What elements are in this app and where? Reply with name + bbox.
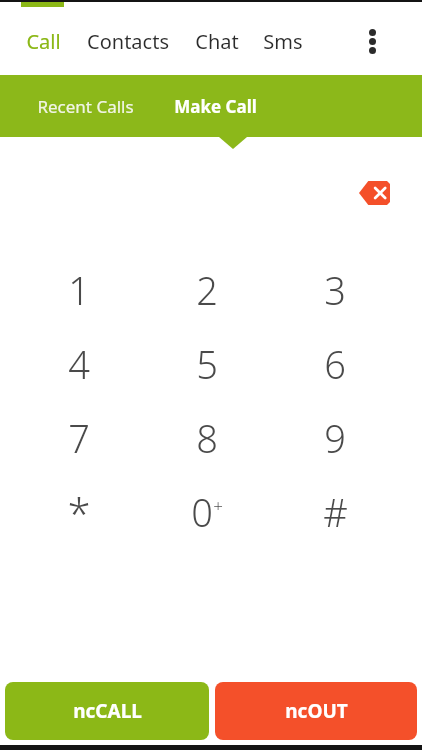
staticText: 4 (68, 338, 90, 390)
button[interactable]: Recent Calls (37, 95, 134, 118)
button[interactable]: Chat (191, 22, 243, 61)
staticText: Recent Calls (37, 95, 134, 118)
button[interactable]: ncOUT (215, 682, 417, 740)
button[interactable]: 0 (143, 475, 271, 549)
button[interactable]: 2 (143, 253, 271, 327)
staticText: Make Call (174, 95, 257, 118)
button[interactable]: Call (22, 22, 65, 61)
button[interactable]: * (15, 475, 143, 549)
staticText: 0 (191, 486, 213, 538)
staticText: ncCALL (73, 698, 142, 724)
staticText: # (323, 486, 348, 538)
staticText: 3 (324, 264, 346, 316)
staticText: 5 (196, 338, 218, 390)
button[interactable]: 5 (143, 327, 271, 401)
staticText: ncOUT (285, 698, 348, 724)
staticText: 8 (196, 412, 218, 464)
staticText: Call (26, 28, 61, 55)
staticText: 2 (196, 264, 218, 316)
staticText: Sms (263, 28, 303, 55)
staticText: + (213, 494, 223, 517)
button[interactable]: Sms (259, 22, 307, 61)
button[interactable]: ncCALL (5, 682, 209, 740)
button[interactable]: 8 (143, 401, 271, 475)
staticText: 9 (324, 412, 346, 464)
button[interactable]: Contacts (83, 22, 173, 61)
button[interactable]: 1 (15, 253, 143, 327)
button[interactable]: Make Call (174, 95, 257, 118)
button[interactable]: 3 (271, 253, 399, 327)
button[interactable]: More options (356, 25, 388, 57)
button[interactable]: 7 (15, 401, 143, 475)
button[interactable]: Backspace (350, 172, 398, 214)
staticText: Chat (195, 28, 239, 55)
staticText: 1 (68, 264, 90, 316)
button[interactable]: 4 (15, 327, 143, 401)
staticText: 6 (324, 338, 346, 390)
staticText: Contacts (87, 28, 169, 55)
button[interactable]: # (271, 475, 399, 549)
button[interactable]: 6 (271, 327, 399, 401)
button[interactable]: 9 (271, 401, 399, 475)
staticText: * (67, 484, 91, 541)
staticText: 7 (68, 412, 90, 464)
